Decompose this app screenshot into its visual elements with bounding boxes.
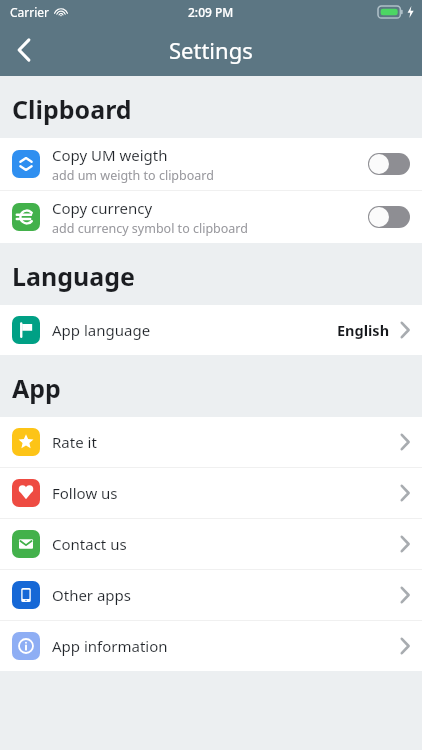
staticText: App [12,371,61,405]
button[interactable]: App language [0,305,422,355]
staticText: Contact us [52,534,400,554]
staticText: Language [12,259,135,293]
button[interactable]: Contact us [0,519,422,569]
staticText: App language [52,320,337,340]
staticText: English [337,320,390,340]
staticText: Settings [169,35,253,65]
staticText: Clipboard [12,92,132,126]
button[interactable]: App information [0,621,422,671]
staticText: Follow us [52,483,400,503]
button[interactable]: Other apps [0,570,422,620]
button[interactable]: Back [0,26,48,74]
button[interactable]: Copy currency [0,191,422,243]
staticText: Other apps [52,585,400,605]
staticText: Carrier [10,4,50,20]
button[interactable]: Follow us [0,468,422,518]
button[interactable] [368,153,410,175]
button[interactable]: Copy UM weigth [0,138,422,190]
staticText: add currency symbol to clipboard [52,220,248,237]
button[interactable] [368,206,410,228]
button[interactable]: Rate it [0,417,422,467]
staticText: 2:09 PM [188,4,234,20]
staticText: Rate it [52,432,400,452]
staticText: add um weigth to clipboard [52,167,214,184]
staticText: App information [52,636,400,656]
staticText: Copy currency [52,198,153,218]
staticText: Copy UM weigth [52,145,168,165]
